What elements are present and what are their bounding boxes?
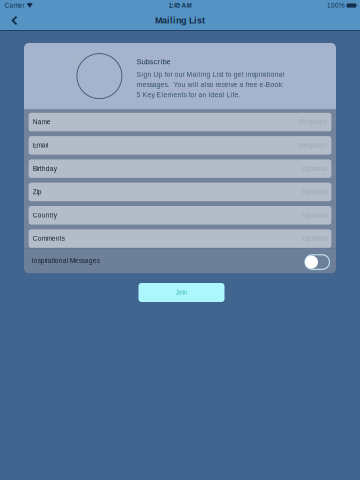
button[interactable]: Birthday [29, 159, 331, 178]
staticText: Optional [302, 235, 327, 242]
staticText: Birthday [33, 165, 57, 172]
staticText: Required [299, 118, 327, 126]
staticText: Required [299, 142, 327, 149]
staticText: Optional [302, 212, 327, 219]
button[interactable]: Comments [29, 229, 331, 248]
staticText: Sign Up for our Mailing List to get insp… [136, 71, 284, 78]
staticText: Email [33, 142, 48, 149]
button[interactable]: Zip [29, 183, 331, 201]
staticText: 1:45 AM [168, 2, 191, 9]
staticText: Inspirational Messages [32, 257, 100, 264]
staticText: Comments [33, 235, 65, 242]
button[interactable]: Email [29, 136, 331, 155]
staticText: 5 Key Elements for an Ideal Life. [136, 91, 240, 99]
staticText: Subscribe [136, 57, 170, 66]
staticText: Mailing List [155, 15, 205, 26]
staticText: messages. You will also receive a free e… [136, 81, 283, 88]
staticText: 100% [327, 2, 345, 9]
button[interactable]: Join [138, 283, 224, 302]
staticText: Country [33, 212, 57, 219]
staticText: Carrier [4, 2, 24, 9]
staticText: Zip [33, 188, 42, 196]
staticText: Optional [302, 165, 327, 172]
staticText: Join [175, 289, 187, 296]
staticText: Optional [302, 188, 327, 196]
button[interactable]: Name [29, 113, 331, 131]
button[interactable]: Country [29, 206, 331, 224]
button[interactable]: Back [0, 11, 26, 30]
staticText: Name [33, 118, 51, 126]
button[interactable]: Inspirational Messages [24, 248, 336, 273]
